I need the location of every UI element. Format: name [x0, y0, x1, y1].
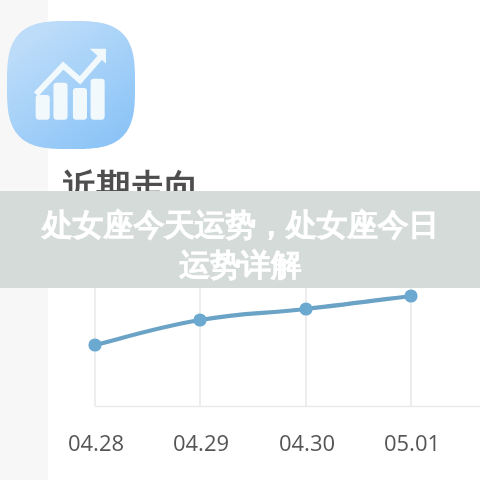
- staticText: 04.28: [51, 427, 141, 457]
- button[interactable]: 近期走向趋势图标: [7, 21, 135, 149]
- staticText: 04.29: [156, 427, 246, 457]
- staticText: 04.30: [262, 427, 352, 457]
- button[interactable]: 近期走向: [62, 166, 198, 209]
- staticText: 05.01: [367, 427, 457, 457]
- staticText: 近期走向: [62, 166, 198, 209]
- button[interactable]: 处女座今天运势，处女座今日运势详解: [0, 191, 480, 288]
- staticText: 处女座今天运势，处女座今日运势详解: [34, 207, 446, 285]
